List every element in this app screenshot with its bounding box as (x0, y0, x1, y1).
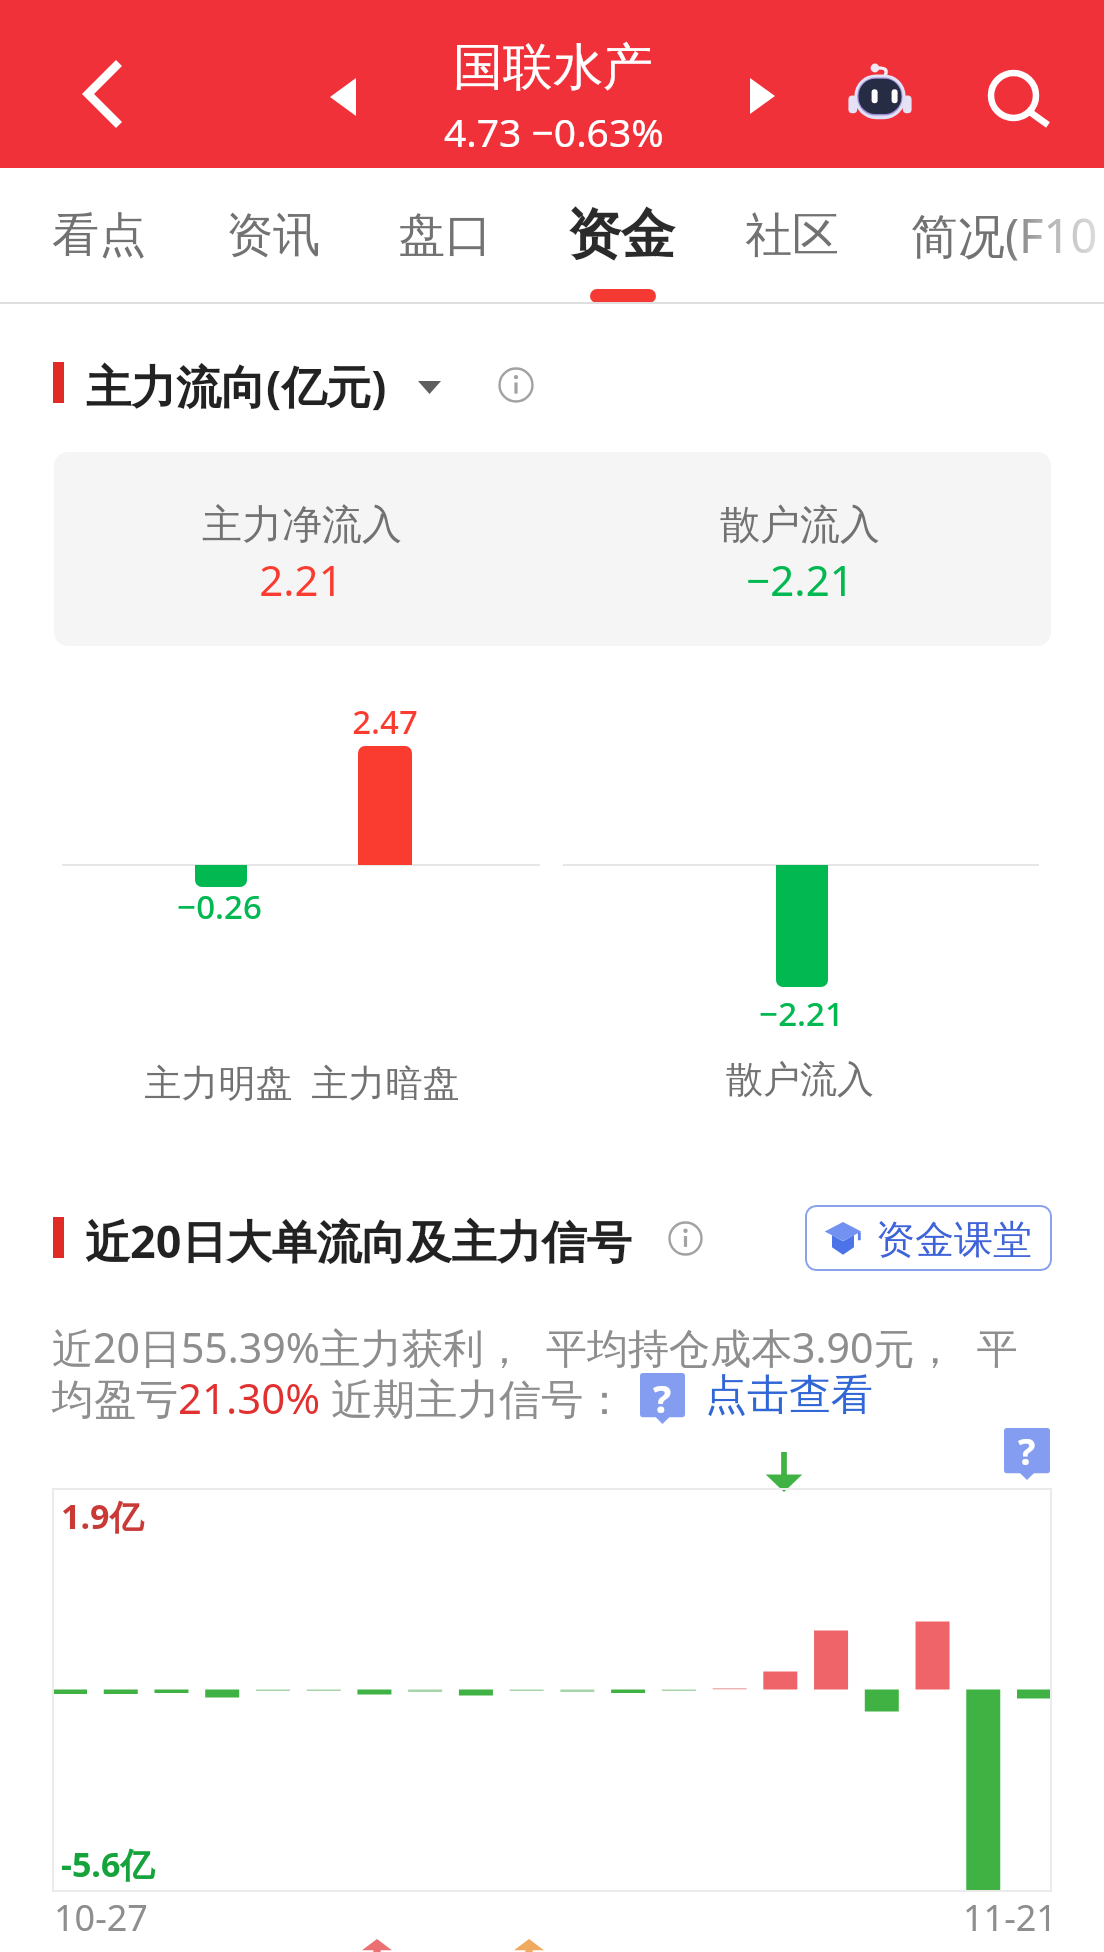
staticText: 资金课堂 (876, 1215, 1032, 1264)
button[interactable]: 资金课堂 (805, 1205, 1052, 1271)
staticText: 社区 (745, 206, 839, 265)
staticText: 4.73 −0.63% (444, 105, 664, 158)
button[interactable]: Change period (404, 366, 454, 408)
staticText: 资金 (567, 201, 675, 269)
staticText: 简况(F10 (911, 203, 1098, 267)
staticText: 散户流入 (726, 1056, 874, 1103)
button[interactable]: 资讯 (204, 168, 298, 302)
staticText: 1.9亿 (61, 1493, 144, 1539)
button[interactable]: Help (1004, 1428, 1050, 1480)
staticText: ? (1018, 1427, 1036, 1476)
button[interactable]: 看点 (30, 168, 124, 302)
button[interactable]: Search (971, 50, 1067, 146)
staticText: 主力流向(亿元) (86, 355, 387, 416)
button[interactable]: Help (640, 1373, 685, 1424)
button[interactable]: 资金 (545, 168, 653, 302)
staticText: 主力明盘 主力暗盘 (144, 1056, 460, 1107)
staticText: 均盈亏21.30% 近期主力信号： (52, 1369, 626, 1426)
staticText: -5.6亿 (61, 1841, 155, 1887)
staticText: 11-21 (963, 1893, 1057, 1942)
button[interactable] (54, 452, 1051, 646)
staticText: 散户流入 (720, 499, 880, 549)
staticText: −2.21 (759, 991, 844, 1036)
staticText: 看点 (52, 206, 146, 265)
button[interactable]: Info (668, 1221, 703, 1256)
button[interactable]: 简况(F10 (889, 168, 1076, 302)
staticText: 资讯 (226, 206, 320, 265)
staticText: 国联水产 (453, 36, 653, 99)
button[interactable]: Back (59, 50, 147, 138)
button[interactable]: Info (498, 367, 534, 403)
button[interactable]: AI assistant (836, 50, 924, 138)
button[interactable]: Previous stock (308, 62, 378, 132)
button[interactable]: 点击查看 (705, 1369, 873, 1422)
button[interactable]: 社区 (723, 168, 817, 302)
staticText: 主力净流入 (202, 499, 402, 549)
staticText: −0.26 (177, 884, 262, 929)
staticText: 盘口 (398, 206, 492, 265)
button[interactable]: 盘口 (376, 168, 470, 302)
staticText: 2.47 (352, 699, 418, 744)
staticText: 点击查看 (705, 1369, 873, 1422)
staticText: ? (653, 1372, 672, 1423)
staticText: 近20日55.39%主力获利， 平均持仓成本3.90元， 平 (52, 1319, 1018, 1375)
staticText: −2.21 (746, 551, 854, 608)
staticText: 10-27 (54, 1893, 148, 1942)
button[interactable]: Next stock (727, 61, 797, 131)
staticText: 近20日大单流向及主力信号 (85, 1210, 632, 1271)
staticText: 2.21 (259, 551, 343, 608)
